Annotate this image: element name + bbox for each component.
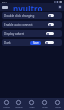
button[interactable]: Toggle bbox=[45, 41, 54, 44]
button[interactable]: Menu bbox=[2, 6, 8, 9]
staticText: Home bbox=[3, 106, 10, 109]
button[interactable]: Double click charging bbox=[2, 12, 62, 19]
staticText: 9:41 bbox=[2, 0, 7, 3]
staticText: Stats bbox=[42, 106, 48, 109]
staticText: Save bbox=[33, 41, 39, 45]
staticText: Display advert bbox=[4, 32, 25, 36]
button[interactable]: Toggle bbox=[48, 14, 54, 17]
other: Scan bbox=[29, 100, 34, 105]
other: Stats bbox=[42, 100, 47, 105]
button[interactable]: Profile bbox=[58, 5, 62, 9]
staticText: Device bbox=[15, 106, 23, 109]
button[interactable]: Toggle bbox=[48, 23, 54, 26]
staticText: Enable auto connect bbox=[4, 23, 33, 27]
staticText: Scan bbox=[29, 106, 35, 109]
button[interactable]: Dark bbox=[2, 39, 62, 46]
button[interactable]: Home bbox=[0, 98, 12, 110]
button[interactable]: Scan bbox=[25, 98, 38, 110]
other: Home bbox=[4, 100, 9, 105]
button[interactable]: Save bbox=[30, 41, 41, 45]
staticText: Double click charging bbox=[4, 14, 35, 18]
other: Device bbox=[16, 100, 21, 105]
button[interactable]: Device bbox=[12, 98, 25, 110]
other: More bbox=[55, 100, 60, 105]
button[interactable]: More bbox=[51, 98, 64, 110]
button[interactable]: Toggle bbox=[46, 32, 54, 35]
button[interactable]: Stats bbox=[38, 98, 51, 110]
button[interactable]: Enable auto connect bbox=[2, 21, 62, 28]
staticText: nvuJtro bbox=[13, 3, 43, 11]
button[interactable]: Display advert bbox=[2, 30, 62, 37]
staticText: Dark bbox=[4, 41, 11, 45]
staticText: More bbox=[55, 106, 61, 109]
